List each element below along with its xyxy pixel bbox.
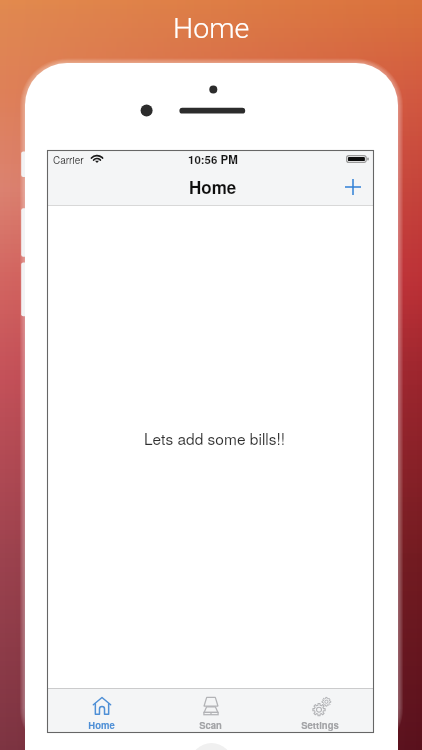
staticText: Home bbox=[173, 12, 250, 45]
button[interactable]: Add bill bbox=[337, 171, 369, 203]
staticText: 10:56 PM bbox=[188, 151, 238, 167]
staticText: Lets add some bills!! bbox=[144, 427, 286, 449]
button[interactable]: Settings bbox=[265, 689, 374, 733]
staticText: Carrier bbox=[53, 153, 84, 167]
staticText: Home bbox=[189, 175, 237, 199]
staticText: Home bbox=[88, 718, 115, 732]
staticText: Scan bbox=[199, 718, 222, 732]
button[interactable]: Home bbox=[47, 689, 156, 733]
staticText: Settings bbox=[301, 718, 339, 732]
button[interactable]: Scan bbox=[156, 689, 265, 733]
